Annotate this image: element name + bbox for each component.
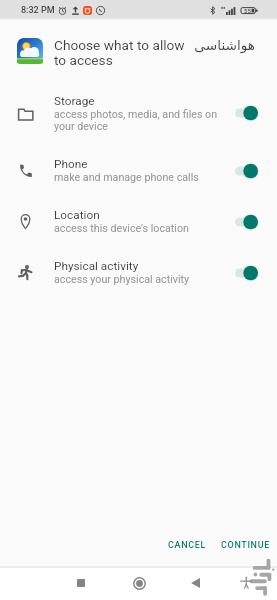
staticText: CANCEL [168, 540, 206, 551]
button[interactable]: Location [0, 196, 277, 247]
button[interactable]: Toggle permission [235, 105, 258, 121]
staticText: make and manage phone calls [54, 171, 199, 184]
button[interactable]: Recents [66, 568, 96, 598]
staticText: Location [54, 208, 100, 222]
button[interactable]: CANCEL [162, 534, 212, 557]
button[interactable]: CONTINUE [215, 534, 276, 557]
button[interactable]: Toggle permission [235, 163, 258, 179]
staticText: access photos, media, and files on your … [54, 108, 218, 132]
staticText: 8:32 PM [21, 5, 55, 16]
staticText: CONTINUE [221, 540, 270, 551]
staticText: 55 [244, 7, 251, 14]
button[interactable]: Home [124, 568, 154, 598]
staticText: Storage [54, 94, 95, 108]
button[interactable]: Storage [0, 81, 277, 145]
button[interactable]: Back [180, 568, 210, 598]
staticText: access your physical activity [54, 273, 190, 286]
staticText: access this device's location [54, 222, 189, 235]
button[interactable]: Phone [0, 145, 277, 196]
button[interactable]: Physical activity [0, 247, 277, 298]
button[interactable]: Toggle permission [235, 214, 258, 230]
staticText: Phone [54, 157, 88, 171]
staticText: Choose what to allow هواشناسی to access [54, 37, 256, 68]
button[interactable]: Toggle permission [235, 265, 258, 281]
staticText: Physical activity [54, 259, 139, 273]
